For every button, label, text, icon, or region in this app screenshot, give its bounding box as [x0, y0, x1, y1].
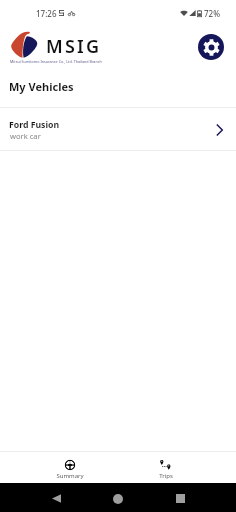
button[interactable]: Back [43, 485, 69, 511]
staticText: My Vehicles [9, 79, 74, 94]
staticText: MSIG [46, 34, 102, 59]
staticText: Trips [134, 472, 198, 480]
button[interactable]: Home [105, 486, 131, 512]
staticText: 17:26 [36, 8, 57, 19]
staticText: Summary [38, 472, 102, 480]
staticText: 72% [204, 8, 220, 19]
staticText: Ford Fusion [9, 119, 60, 131]
button[interactable]: Trips [134, 452, 198, 483]
button[interactable]: Recents [167, 485, 193, 511]
staticText: Mitsui Sumitomo Insurance Co., Ltd. Thai… [10, 59, 102, 64]
button[interactable]: Ford Fusion [0, 108, 236, 151]
button[interactable]: Settings [198, 34, 224, 60]
button[interactable]: Summary [38, 452, 102, 483]
staticText: work car [10, 131, 41, 141]
